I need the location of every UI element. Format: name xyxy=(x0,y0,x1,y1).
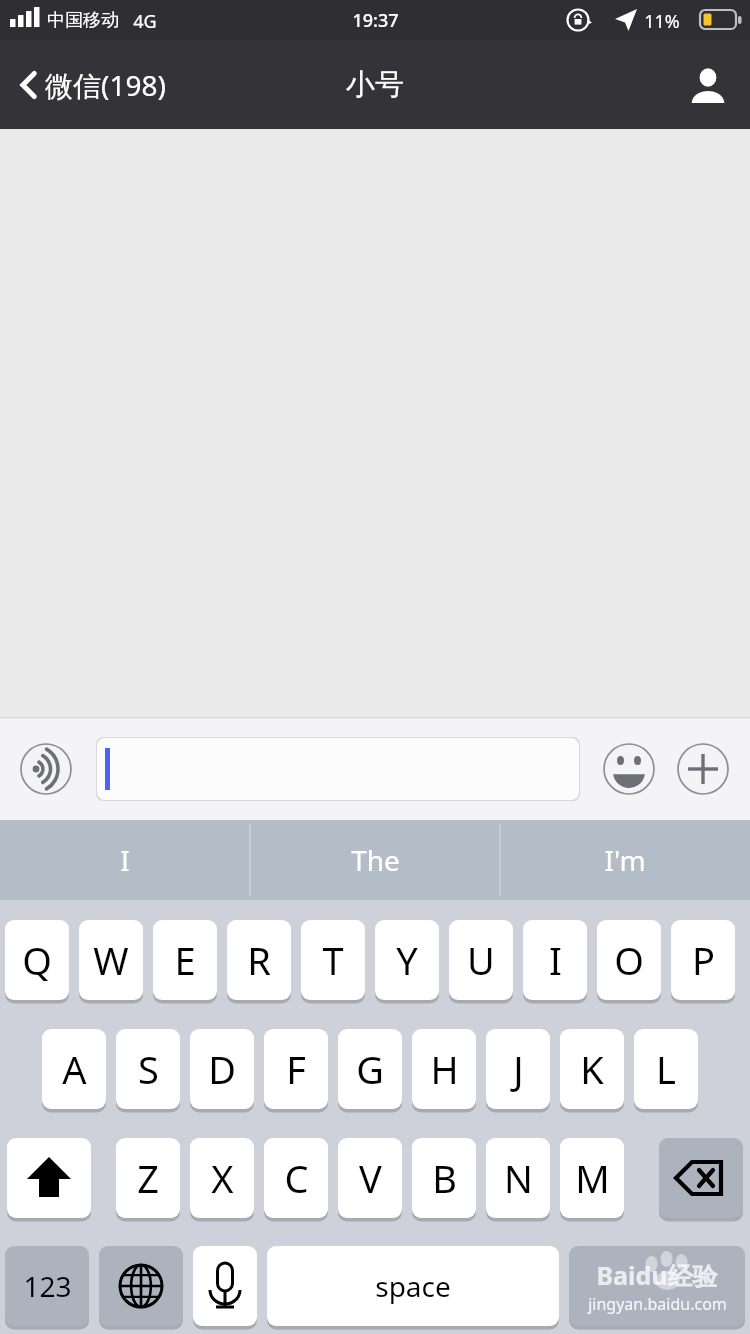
staticText: G xyxy=(356,1043,384,1095)
button[interactable]: Q xyxy=(5,920,69,1000)
button[interactable]: S xyxy=(116,1029,180,1109)
staticText: K xyxy=(580,1043,604,1095)
staticText: W xyxy=(93,934,129,986)
button[interactable]: E xyxy=(153,920,217,1000)
button[interactable]: The xyxy=(250,820,500,900)
button[interactable]: Voice message xyxy=(20,743,72,795)
staticText: V xyxy=(359,1152,382,1204)
button[interactable]: Baidu经验 xyxy=(569,1246,745,1326)
staticText: 小号 xyxy=(346,66,404,103)
staticText: N xyxy=(504,1152,533,1204)
staticText: A xyxy=(62,1043,87,1095)
button[interactable]: J xyxy=(486,1029,550,1109)
button[interactable]: space xyxy=(267,1246,559,1326)
button[interactable]: N xyxy=(486,1138,550,1218)
staticText: I'm xyxy=(604,841,646,879)
staticText: jingyan.baidu.com xyxy=(588,1293,727,1315)
staticText: H xyxy=(430,1043,459,1095)
staticText: F xyxy=(286,1043,306,1095)
button[interactable]: Voice dictation xyxy=(193,1246,257,1326)
button[interactable]: Emoji xyxy=(603,743,655,795)
button[interactable]: I xyxy=(0,820,250,900)
staticText: P xyxy=(692,934,715,986)
staticText: The xyxy=(351,841,400,879)
staticText: Z xyxy=(137,1152,159,1204)
staticText: 微信(198) xyxy=(45,66,166,104)
button[interactable]: D xyxy=(190,1029,254,1109)
staticText: T xyxy=(322,934,344,986)
button[interactable]: Change keyboard language xyxy=(99,1246,183,1326)
staticText: 4G xyxy=(133,9,157,34)
staticText: R xyxy=(247,934,271,986)
staticText: L xyxy=(656,1043,676,1095)
button[interactable]: X xyxy=(190,1138,254,1218)
button[interactable]: Shift xyxy=(7,1138,91,1218)
button[interactable]: B xyxy=(412,1138,476,1218)
staticText: C xyxy=(284,1152,309,1204)
button[interactable]: K xyxy=(560,1029,624,1109)
button[interactable]: O xyxy=(597,920,661,1000)
staticText: 19:37 xyxy=(352,8,399,33)
staticText: X xyxy=(211,1152,234,1204)
staticText: 中国移动 xyxy=(47,9,119,32)
button[interactable]: I xyxy=(523,920,587,1000)
button[interactable]: W xyxy=(79,920,143,1000)
staticText: space xyxy=(375,1267,451,1305)
staticText: M xyxy=(575,1152,610,1204)
button[interactable]: 123 xyxy=(5,1246,89,1326)
button[interactable]: More options xyxy=(677,743,729,795)
button[interactable]: U xyxy=(449,920,513,1000)
staticText: Q xyxy=(22,934,52,986)
button[interactable]: Contact profile xyxy=(682,59,734,111)
staticText: D xyxy=(208,1043,236,1095)
button[interactable]: Z xyxy=(116,1138,180,1218)
button[interactable]: V xyxy=(338,1138,402,1218)
button[interactable]: T xyxy=(301,920,365,1000)
button[interactable]: G xyxy=(338,1029,402,1109)
button[interactable]: H xyxy=(412,1029,476,1109)
staticText: S xyxy=(138,1043,159,1095)
staticText: Baidu经验 xyxy=(596,1258,718,1292)
staticText: B xyxy=(432,1152,457,1204)
staticText: 123 xyxy=(23,1267,72,1305)
button[interactable]: F xyxy=(264,1029,328,1109)
staticText: E xyxy=(174,934,196,986)
staticText: I xyxy=(120,841,130,879)
button[interactable]: M xyxy=(560,1138,624,1218)
button[interactable]: A xyxy=(42,1029,106,1109)
button[interactable]: Y xyxy=(375,920,439,1000)
staticText: O xyxy=(614,934,644,986)
staticText: I xyxy=(549,934,562,986)
button[interactable] xyxy=(96,737,580,801)
staticText: U xyxy=(467,934,495,986)
button[interactable]: 微信(198) xyxy=(10,58,174,112)
button[interactable]: R xyxy=(227,920,291,1000)
button[interactable]: Backspace xyxy=(659,1138,743,1218)
staticText: Y xyxy=(396,934,418,986)
staticText: 11% xyxy=(644,9,680,34)
button[interactable]: L xyxy=(634,1029,698,1109)
staticText: J xyxy=(513,1043,524,1095)
button[interactable]: P xyxy=(671,920,735,1000)
button[interactable]: I'm xyxy=(500,820,750,900)
button[interactable]: C xyxy=(264,1138,328,1218)
